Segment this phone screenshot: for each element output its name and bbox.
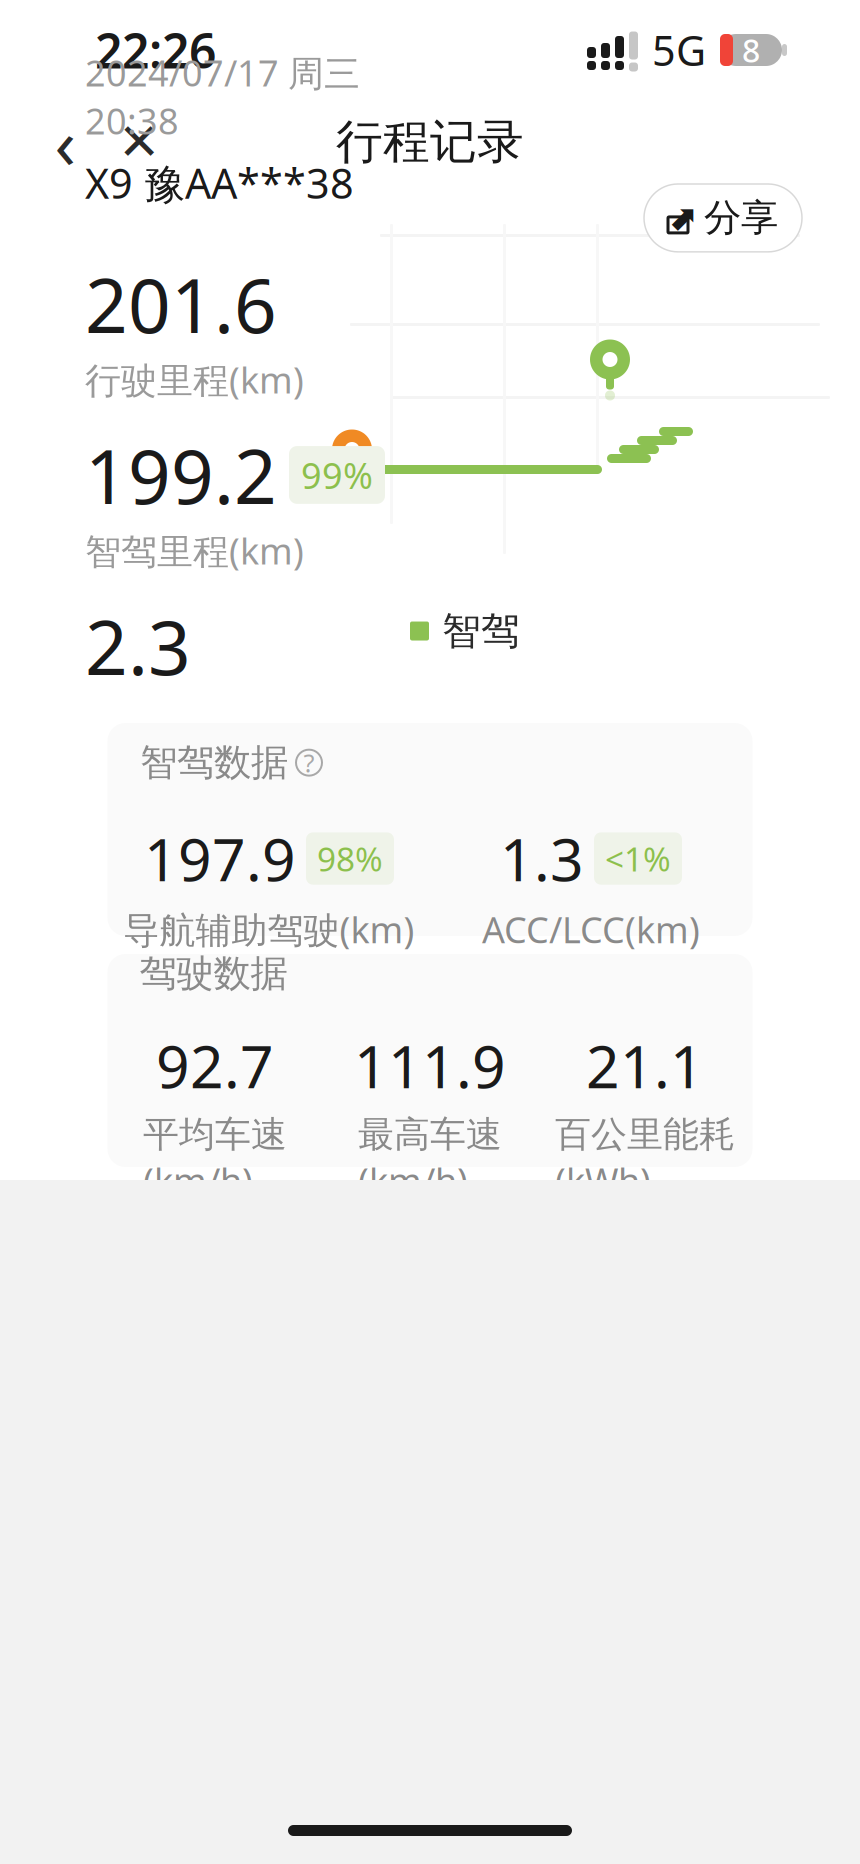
staticText: 驾驶数据 — [139, 951, 287, 996]
staticText: 5G — [652, 23, 706, 77]
staticText: 98% — [317, 836, 383, 881]
staticText: 分享 — [704, 195, 778, 241]
button[interactable]: Close — [108, 111, 170, 173]
staticText: 111.9 — [354, 1026, 506, 1104]
staticText: 智驾里程(km) — [85, 526, 304, 574]
staticText: 百公里能耗(kWh) — [555, 1112, 735, 1204]
staticText: 平均车速(km/h) — [143, 1112, 287, 1204]
staticText: ? — [303, 746, 314, 779]
staticText: 2024/07/17 周三 20:38 — [85, 49, 360, 144]
button[interactable]: ⬈ — [644, 184, 802, 252]
staticText: ✕ — [118, 113, 160, 171]
staticText: 导航辅助驾驶(km) — [123, 905, 414, 953]
staticText: X9 豫AA***38 — [85, 155, 354, 210]
staticText: 2.3 — [85, 596, 191, 695]
staticText: 99% — [301, 451, 373, 499]
staticText: 8 — [742, 29, 760, 71]
staticText: <1% — [605, 836, 671, 881]
staticText: 行程记录 — [336, 113, 524, 171]
button[interactable]: Back — [34, 96, 96, 188]
staticText: ⬈ — [667, 198, 696, 238]
staticText: 智驾 — [442, 607, 520, 655]
staticText: 92.7 — [156, 1026, 274, 1104]
staticText: 智驾数据 — [140, 740, 288, 786]
staticText: 197.9 — [144, 820, 296, 897]
staticText: 22:26 — [95, 18, 216, 82]
button[interactable]: About autopilot data — [296, 746, 322, 779]
staticText: 201.6 — [85, 254, 277, 354]
staticText: 最高车速(km/h) — [358, 1112, 502, 1204]
staticText: ACC/LCC(km) — [482, 905, 700, 953]
staticText: 199.2 — [85, 425, 277, 525]
staticText: 1.3 — [500, 820, 584, 897]
staticText: ‹ — [54, 96, 75, 188]
staticText: 行驶里程(km) — [85, 356, 304, 403]
staticText: 21.1 — [586, 1026, 704, 1104]
